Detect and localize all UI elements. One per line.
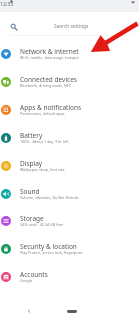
button[interactable]: Home (62, 300, 82, 322)
staticText: Connected devices (20, 75, 77, 84)
staticText: Sound (20, 187, 40, 196)
staticText: Apps & notifications (20, 103, 82, 112)
staticText: Battery (20, 131, 43, 140)
staticText: 12:33 (0, 0, 14, 7)
staticText: Network & internet (20, 47, 79, 56)
button[interactable]: Accessibility (0, 291, 139, 319)
button[interactable]: Search settings (4, 18, 135, 35)
staticText: Volume, vibration, Do Not Disturb (20, 195, 79, 200)
staticText: Google (20, 278, 33, 283)
button[interactable]: Security & location (0, 235, 139, 263)
staticText: Storage (20, 214, 44, 223)
staticText: Security & location (20, 242, 77, 251)
button[interactable]: Apps & notifications (0, 96, 139, 124)
button[interactable]: Back (22, 300, 36, 322)
staticText: Permissions, default apps (20, 111, 65, 116)
button[interactable]: Storage (0, 207, 139, 235)
button[interactable]: Sound (0, 180, 139, 208)
staticText: 34% used - 42.34 GB free (20, 222, 64, 227)
button[interactable]: Battery (0, 124, 139, 152)
staticText: Play Protect, screen lock, fingerprint (20, 250, 83, 255)
staticText: Search settings (54, 23, 89, 30)
button[interactable]: Network & internet (0, 40, 139, 68)
button[interactable]: Connected devices (0, 68, 139, 96)
button[interactable]: Accounts (0, 263, 139, 291)
staticText: Wi-Fi, mobile, data usage, hotspot (20, 55, 79, 60)
staticText: Wallpaper, sleep, font size (20, 167, 65, 172)
staticText: Bluetooth, driving mode, NFC (20, 83, 72, 88)
button[interactable]: Display (0, 152, 139, 180)
staticText: Accounts (20, 270, 48, 279)
staticText: Screen readers, display, interaction (20, 306, 81, 311)
staticText: Display (20, 159, 43, 168)
staticText: 100% - About 1 day, 9 hr left (20, 139, 69, 144)
